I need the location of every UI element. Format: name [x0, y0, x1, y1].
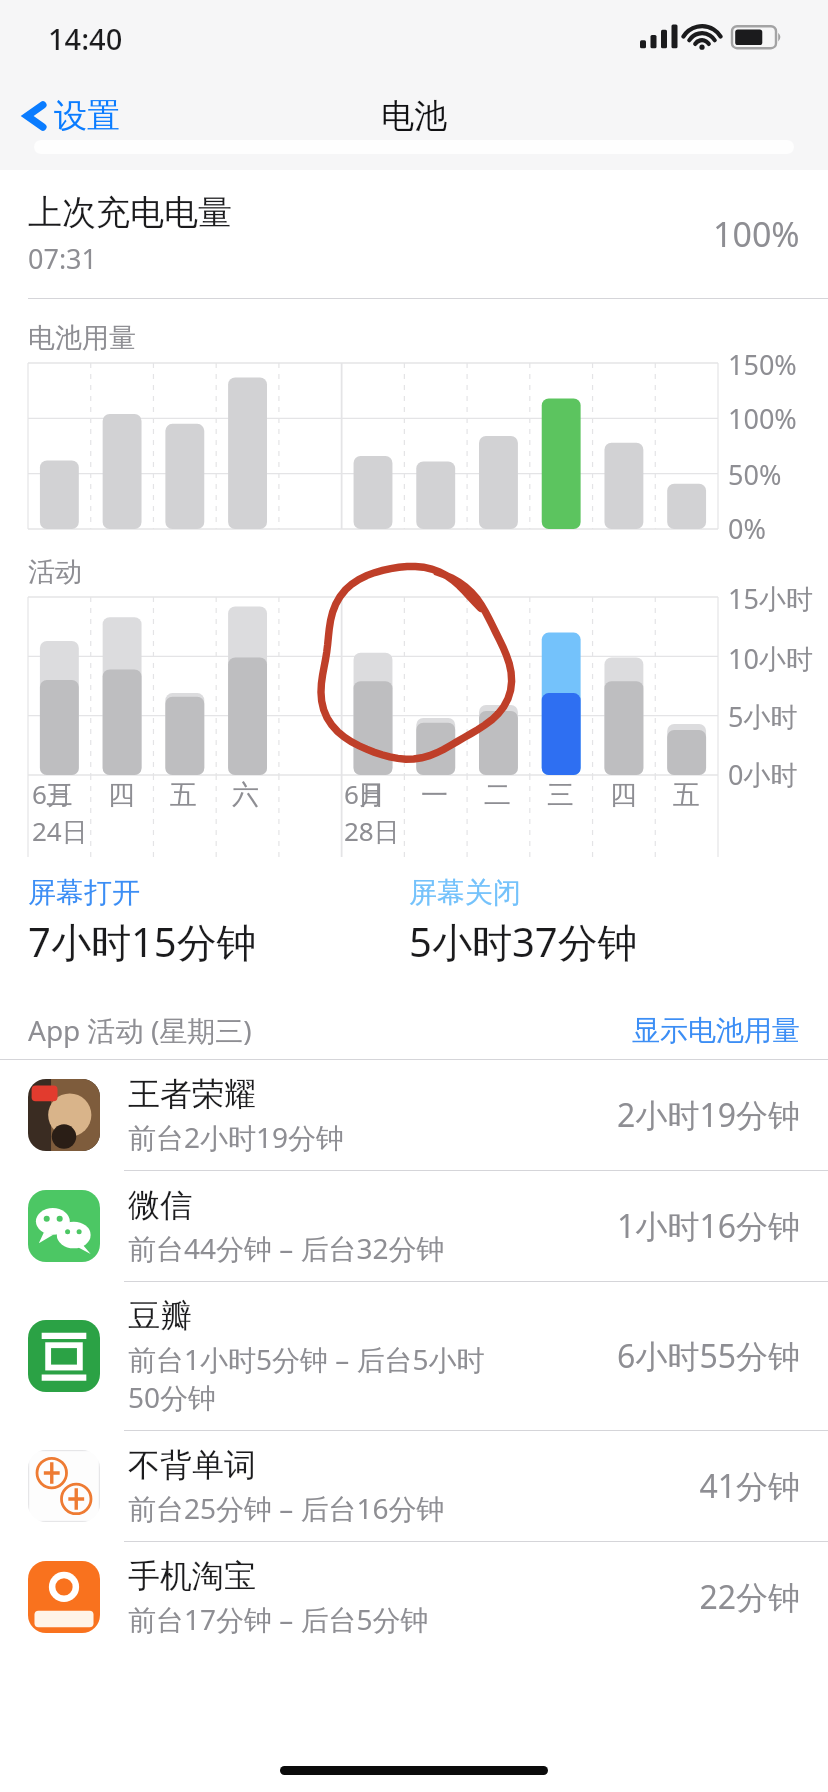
staticText: 四 — [108, 778, 135, 812]
button[interactable]: 豆瓣 — [0, 1282, 828, 1430]
staticText: 7小时15分钟 — [28, 914, 257, 969]
staticText: 0小时 — [728, 756, 798, 793]
staticText: 显示电池用量 — [632, 1013, 800, 1048]
staticText: 四 — [610, 778, 637, 812]
staticText: 6月28日 — [344, 776, 403, 849]
button[interactable]: 微信 — [0, 1171, 828, 1281]
staticText: 5小时37分钟 — [409, 914, 638, 969]
staticText: 100% — [713, 211, 800, 257]
button[interactable]: Back — [0, 86, 136, 146]
staticText: 三 — [547, 778, 574, 812]
staticText: 王者荣耀 — [128, 1074, 256, 1114]
staticText: 五 — [170, 778, 197, 812]
staticText: 前台17分钟 – 后台5分钟 — [128, 1600, 429, 1638]
button[interactable]: 手机淘宝 — [0, 1542, 828, 1652]
staticText: 日 — [358, 778, 385, 812]
staticText: 上次充电电量 — [28, 191, 232, 234]
staticText: 前台44分钟 – 后台32分钟 — [128, 1229, 445, 1267]
staticText: 150% — [728, 346, 797, 383]
staticText: 微信 — [128, 1185, 192, 1225]
staticText: 15小时 — [728, 580, 813, 617]
staticText: 5小时 — [728, 698, 798, 735]
staticText: 0% — [728, 510, 766, 547]
staticText: 六 — [232, 778, 259, 812]
staticText: 6月24日 — [32, 776, 90, 849]
staticText: 50% — [728, 456, 782, 493]
staticText: App 活动 (星期三) — [28, 1011, 252, 1049]
staticText: 50分钟 — [128, 1378, 217, 1416]
button[interactable]: 王者荣耀 — [0, 1060, 828, 1170]
staticText: 手机淘宝 — [128, 1556, 256, 1596]
staticText: 五 — [673, 778, 700, 812]
staticText: 电池用量 — [28, 321, 136, 355]
staticText: 一 — [421, 778, 448, 812]
staticText: 设置 — [54, 95, 120, 137]
staticText: 屏幕关闭 — [409, 875, 521, 910]
staticText: 100% — [728, 400, 797, 437]
staticText: 前台2小时19分钟 — [128, 1118, 345, 1156]
button[interactable]: 显示电池用量 — [616, 1003, 828, 1058]
staticText: 屏幕打开 — [28, 875, 140, 910]
staticText: 6小时55分钟 — [617, 1334, 800, 1378]
staticText: 1小时16分钟 — [617, 1204, 800, 1248]
staticText: 电池 — [381, 95, 447, 137]
other: Back — [22, 94, 48, 138]
staticText: 豆瓣 — [128, 1296, 192, 1336]
staticText: 前台1小时5分钟 – 后台5小时 — [128, 1340, 485, 1378]
staticText: 前台25分钟 – 后台16分钟 — [128, 1489, 445, 1527]
staticText: 2小时19分钟 — [617, 1093, 800, 1137]
button[interactable]: 不背单词 — [0, 1431, 828, 1541]
staticText: 41分钟 — [699, 1464, 800, 1508]
staticText: 22分钟 — [699, 1575, 800, 1619]
staticText: 07:31 — [28, 240, 98, 277]
staticText: 活动 — [28, 555, 82, 589]
button[interactable]: 上次充电电量 — [0, 170, 828, 298]
staticText: 二 — [484, 778, 511, 812]
staticText: 14:40 — [48, 19, 123, 58]
staticText: 10小时 — [728, 640, 813, 677]
staticText: 不背单词 — [128, 1445, 256, 1485]
staticText: 三 — [46, 778, 73, 812]
